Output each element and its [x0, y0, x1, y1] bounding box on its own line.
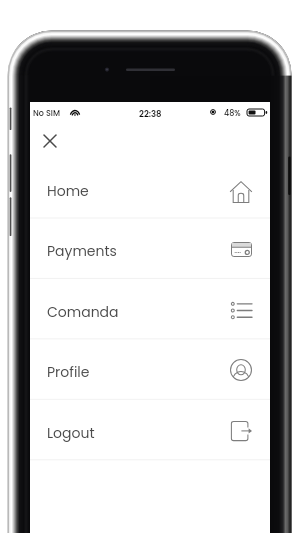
staticText: Profile: [47, 362, 90, 382]
staticText: No SIM: [33, 108, 60, 119]
staticText: 48%: [224, 108, 241, 119]
button[interactable]: Logout: [30, 400, 270, 460]
staticText: Payments: [47, 241, 117, 261]
staticText: 22:38: [139, 108, 162, 120]
button[interactable]: Profile: [30, 339, 270, 399]
button[interactable]: Payments: [30, 218, 270, 278]
button[interactable]: Home: [30, 158, 270, 218]
staticText: Comanda: [47, 302, 119, 322]
staticText: Home: [47, 181, 89, 201]
button[interactable]: Close: [35, 126, 65, 156]
staticText: Logout: [47, 423, 95, 443]
button[interactable]: Comanda: [30, 279, 270, 339]
